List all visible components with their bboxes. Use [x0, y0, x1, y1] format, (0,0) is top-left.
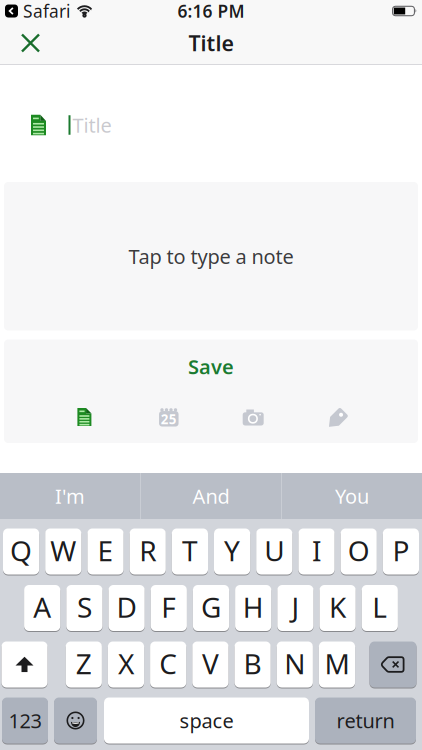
staticText: Tap to type a note: [128, 243, 293, 270]
button[interactable]: C: [150, 641, 186, 688]
button[interactable]: Close: [0, 22, 39, 63]
staticText: Title: [188, 29, 233, 57]
button[interactable]: R: [130, 528, 166, 575]
button[interactable]: Safari: [2, 0, 92, 22]
button[interactable]: Y: [214, 528, 250, 575]
staticText: space: [179, 707, 233, 734]
staticText: 25: [161, 410, 177, 428]
staticText: return: [336, 707, 394, 734]
button[interactable]: return: [315, 697, 416, 744]
staticText: E: [97, 532, 113, 569]
staticText: D: [117, 588, 137, 626]
button[interactable]: L: [362, 584, 398, 631]
staticText: K: [329, 588, 346, 626]
button[interactable]: J: [277, 584, 313, 631]
staticText: X: [118, 645, 134, 682]
button[interactable]: I'm: [0, 473, 140, 519]
button[interactable]: N: [277, 641, 313, 688]
staticText: L: [372, 588, 387, 626]
button[interactable]: Shift: [1, 641, 47, 688]
staticText: U: [264, 532, 284, 569]
staticText: V: [202, 645, 219, 682]
staticText: J: [291, 588, 299, 626]
staticText: And: [192, 483, 229, 509]
button[interactable]: Tap to type a note: [0, 182, 422, 330]
button[interactable]: G: [193, 584, 229, 631]
button[interactable]: W: [45, 528, 81, 575]
button[interactable]: X: [108, 641, 144, 688]
staticText: C: [159, 645, 177, 682]
staticText: T: [182, 532, 198, 569]
button[interactable]: E: [87, 528, 124, 575]
button[interactable]: Q: [3, 528, 39, 575]
button[interactable]: Reminder: [147, 398, 191, 435]
button[interactable]: V: [192, 641, 228, 688]
staticText: I: [312, 532, 321, 569]
button[interactable]: Delete: [369, 641, 416, 688]
staticText: S: [77, 588, 92, 626]
button[interactable]: Note: [62, 399, 106, 435]
button[interactable]: I: [298, 528, 335, 575]
button[interactable]: Emoji: [54, 697, 97, 744]
button[interactable]: Z: [66, 641, 102, 688]
staticText: F: [161, 588, 176, 626]
staticText: N: [284, 645, 305, 682]
staticText: Title: [72, 112, 111, 138]
staticText: Safari: [23, 0, 70, 22]
button[interactable]: And: [141, 473, 281, 519]
staticText: H: [243, 588, 264, 626]
button[interactable]: H: [235, 584, 271, 631]
button[interactable]: S: [66, 584, 102, 631]
button[interactable]: Photo: [231, 398, 276, 435]
staticText: O: [348, 532, 370, 569]
staticText: R: [139, 532, 156, 569]
button[interactable]: O: [341, 528, 377, 575]
staticText: I'm: [55, 483, 85, 509]
staticText: 6:16 PM: [177, 0, 244, 22]
staticText: You: [335, 483, 369, 509]
button[interactable]: P: [383, 528, 419, 575]
button[interactable]: A: [24, 584, 60, 631]
staticText: Save: [188, 353, 234, 380]
button[interactable]: F: [151, 584, 187, 631]
staticText: B: [244, 645, 262, 682]
button[interactable]: M: [319, 641, 355, 688]
staticText: A: [33, 588, 51, 626]
staticText: 123: [8, 707, 41, 734]
staticText: W: [50, 532, 76, 569]
button[interactable]: B: [234, 641, 271, 688]
staticText: Z: [76, 645, 92, 682]
button[interactable]: Save: [164, 345, 258, 388]
button[interactable]: T: [172, 528, 208, 575]
button[interactable]: Title: [0, 65, 422, 182]
button[interactable]: Tag: [315, 397, 360, 436]
staticText: G: [201, 588, 221, 626]
button[interactable]: space: [104, 697, 309, 744]
button[interactable]: U: [256, 528, 292, 575]
button[interactable]: D: [108, 584, 145, 631]
staticText: P: [392, 532, 409, 569]
staticText: Q: [10, 532, 32, 569]
button[interactable]: You: [282, 473, 422, 519]
staticText: M: [324, 645, 349, 682]
button[interactable]: K: [319, 584, 356, 631]
staticText: Y: [224, 532, 240, 569]
button[interactable]: 123: [2, 697, 48, 744]
